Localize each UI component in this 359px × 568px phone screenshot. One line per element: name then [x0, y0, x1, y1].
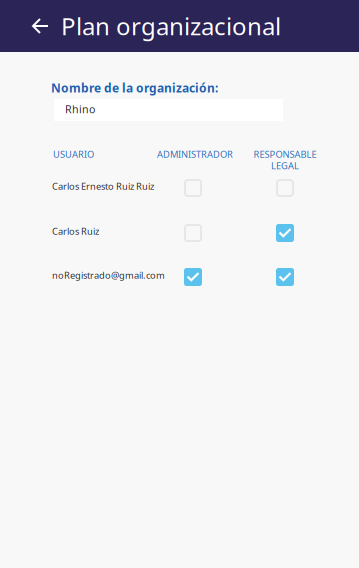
button[interactable]: Administrador — noRegistrado@gmail.com	[184, 268, 202, 286]
staticText: Plan organizacional	[61, 10, 281, 42]
staticText: USUARIO	[53, 148, 94, 160]
button[interactable]: Rhino	[54, 99, 283, 121]
staticText: Nombre de la organización:	[51, 80, 218, 96]
button[interactable]: Administrador — Carlos Ernesto Ruiz Ruiz	[184, 179, 202, 197]
button[interactable]: Atrás	[0, 0, 62, 52]
staticText: Carlos Ernesto Ruiz Ruiz	[52, 180, 154, 192]
staticText: ADMINISTRADOR	[157, 148, 233, 160]
button[interactable]: Responsable legal — noRegistrado@gmail.c…	[276, 268, 294, 286]
staticText: noRegistrado@gmail.com	[52, 269, 165, 281]
staticText: Carlos Ruiz	[52, 225, 99, 237]
button[interactable]: Responsable legal — Carlos Ernesto Ruiz …	[276, 179, 294, 197]
staticText: Rhino	[65, 102, 95, 116]
staticText: RESPONSABLE	[253, 148, 316, 160]
button[interactable]: Responsable legal — Carlos Ruiz	[276, 224, 294, 242]
staticText: LEGAL	[271, 159, 299, 172]
button[interactable]: Administrador — Carlos Ruiz	[184, 224, 202, 242]
